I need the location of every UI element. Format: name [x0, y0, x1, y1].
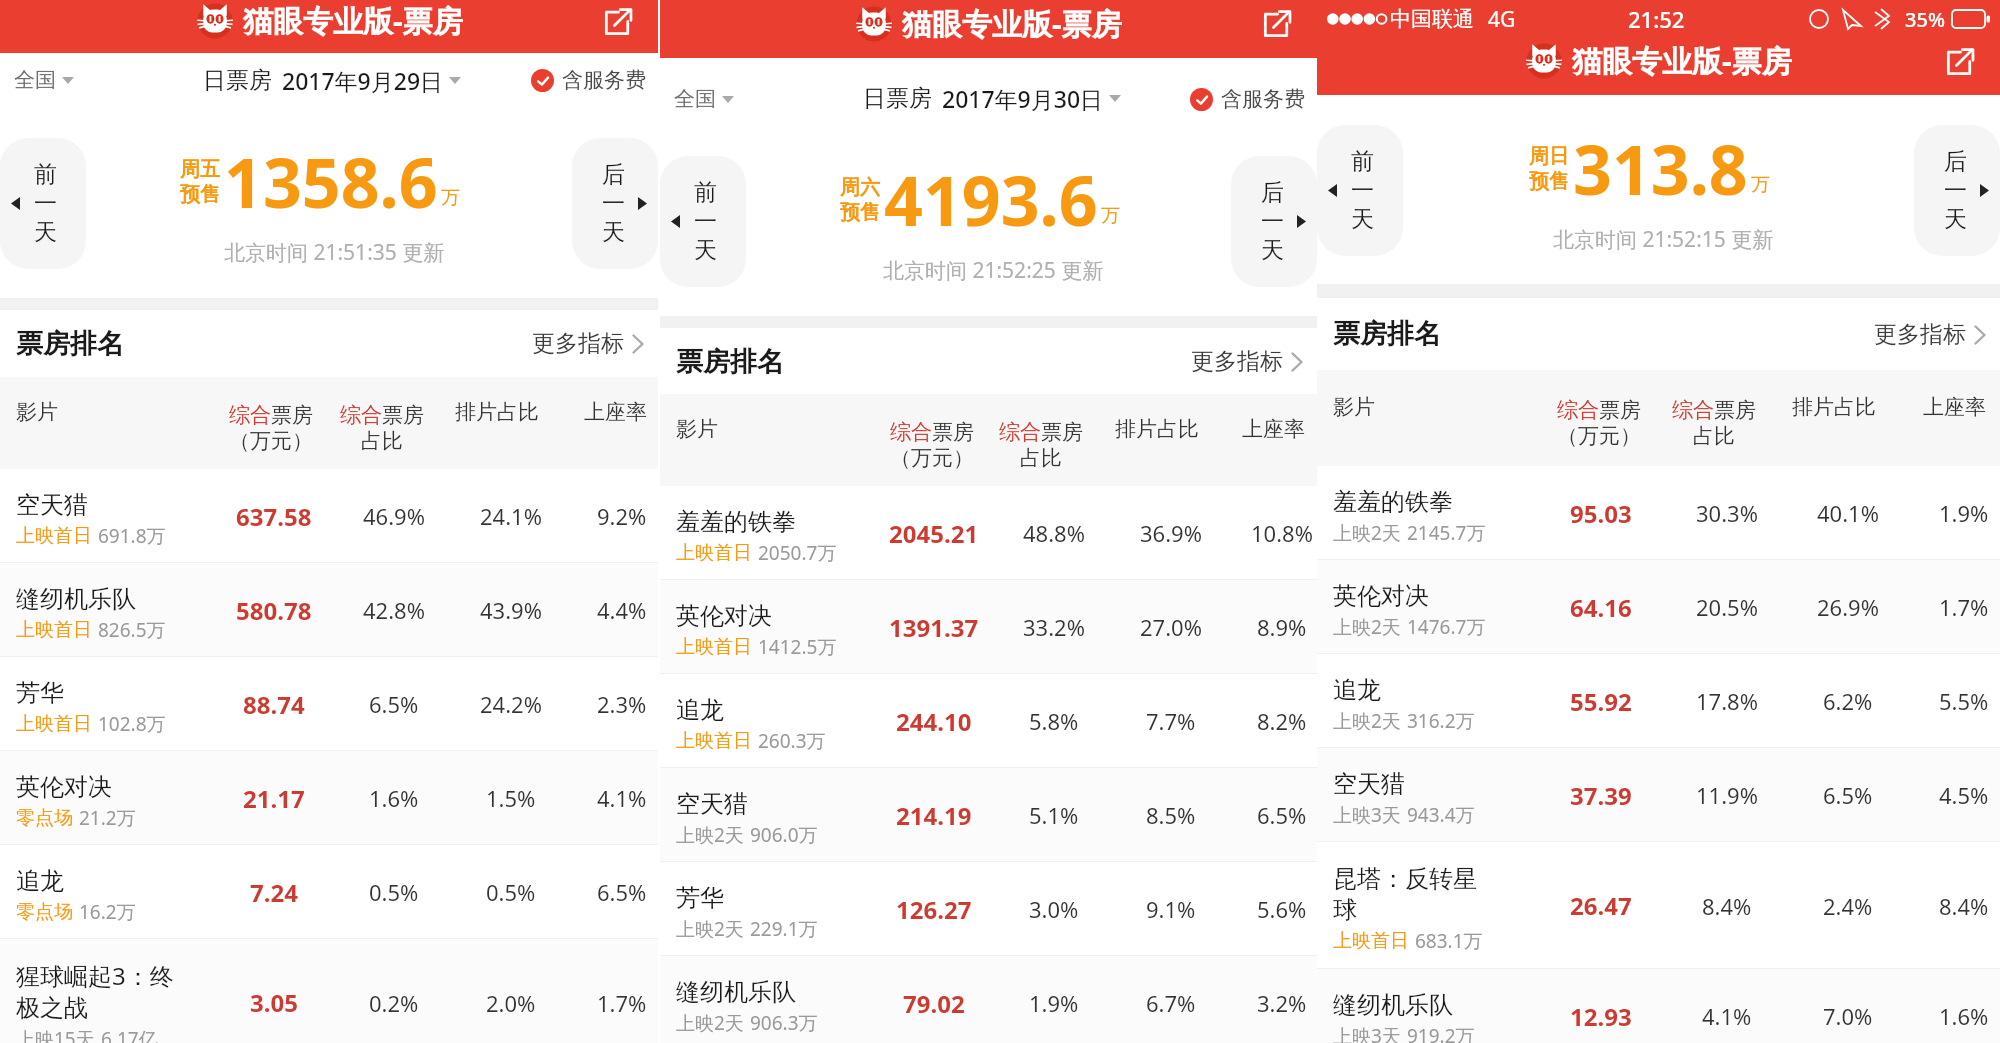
button[interactable]: 追龙: [0, 845, 658, 939]
staticText: 周六: [840, 175, 880, 200]
staticText: 7.7%: [1146, 706, 1196, 736]
staticText: 6.2%: [1823, 686, 1873, 716]
button[interactable]: 更多指标: [1183, 339, 1317, 384]
button[interactable]: 日票房: [863, 77, 1121, 120]
button[interactable]: 含服务费: [525, 61, 658, 99]
staticText: 95.03: [1570, 497, 1632, 530]
button[interactable]: 追龙: [660, 674, 1317, 768]
staticText: 天: [602, 218, 625, 247]
staticText: 943.4万: [1407, 802, 1475, 828]
staticText: 5.6%: [1257, 894, 1307, 924]
button[interactable]: 空天猎: [660, 768, 1317, 862]
staticText: 4.4%: [597, 595, 647, 625]
staticText: 1.7%: [1939, 592, 1989, 622]
staticText: 37.39: [1570, 779, 1632, 812]
button[interactable]: 含服务费: [1184, 80, 1317, 118]
button[interactable]: Share: [594, 0, 642, 45]
button[interactable]: 羞羞的铁拳: [660, 486, 1317, 580]
staticText: 5.5%: [1939, 686, 1989, 716]
button[interactable]: 空天猎: [1317, 748, 2000, 842]
staticText: 上映3天: [1333, 802, 1401, 828]
staticText: 占比: [361, 428, 403, 454]
staticText: 27.0%: [1140, 612, 1202, 642]
staticText: 猩球崛起3：终极之战: [16, 959, 179, 1023]
staticText: 综合票房: [340, 402, 424, 428]
staticText: 580.78: [236, 594, 312, 627]
staticText: 919.2万: [1407, 1023, 1475, 1043]
staticText: 42.8%: [363, 595, 425, 625]
staticText: 1.9%: [1939, 498, 1989, 528]
staticText: 上映2天: [676, 1010, 744, 1036]
staticText: 猫眼专业版-票房: [1572, 40, 1792, 81]
staticText: 2017年9月29日: [282, 65, 444, 96]
staticText: 北京时间 21:52:25 更新: [883, 256, 1104, 285]
button[interactable]: 芳华: [660, 862, 1317, 956]
button[interactable]: 缝纫机乐队: [1317, 969, 2000, 1043]
button[interactable]: 英伦对决: [0, 751, 658, 845]
button[interactable]: Next day: [1914, 125, 2000, 256]
button[interactable]: 缝纫机乐队: [660, 956, 1317, 1043]
staticText: 缝纫机乐队: [676, 977, 839, 1007]
button[interactable]: Previous day: [0, 138, 86, 269]
staticText: 7.24: [250, 876, 298, 909]
staticText: 691.8万: [98, 523, 166, 549]
button[interactable]: 日票房: [203, 59, 461, 102]
button[interactable]: Share: [1936, 37, 1984, 85]
button[interactable]: 芳华: [0, 657, 658, 751]
staticText: 1412.5万: [758, 634, 837, 660]
staticText: 排片占比: [1115, 416, 1199, 442]
button[interactable]: 昆塔：反转星球: [1317, 842, 2000, 969]
staticText: 6.5%: [1823, 780, 1873, 810]
staticText: 3.0%: [1029, 894, 1079, 924]
button[interactable]: 英伦对决: [660, 580, 1317, 674]
staticText: 全国: [674, 86, 716, 112]
button[interactable]: Previous day: [660, 156, 746, 287]
staticText: 综合票房: [229, 402, 313, 428]
staticText: 占比: [1020, 445, 1062, 471]
button[interactable]: 缝纫机乐队: [0, 563, 658, 657]
staticText: 906.0万: [750, 822, 818, 848]
button[interactable]: 更多指标: [524, 321, 658, 366]
staticText: 9.1%: [1146, 894, 1196, 924]
staticText: 周五: [180, 157, 220, 182]
staticText: 天: [694, 236, 717, 265]
button[interactable]: 英伦对决: [1317, 560, 2000, 654]
staticText: 48.8%: [1023, 518, 1085, 548]
staticText: 影片: [1333, 394, 1375, 420]
button[interactable]: 更多指标: [1866, 312, 2000, 357]
staticText: 24.2%: [480, 689, 542, 719]
staticText: 43.9%: [480, 595, 542, 625]
staticText: 906.3万: [750, 1010, 818, 1036]
button[interactable]: Previous day: [1317, 125, 1403, 256]
staticText: 4193.6: [884, 153, 1098, 246]
staticText: 9.2%: [597, 501, 647, 531]
staticText: 上映首日: [16, 524, 92, 548]
button[interactable]: 空天猎: [0, 469, 658, 563]
staticText: 前: [1351, 147, 1374, 176]
staticText: 5.1%: [1029, 800, 1079, 830]
button[interactable]: 追龙: [1317, 654, 2000, 748]
staticText: 2050.7万: [758, 540, 837, 566]
staticText: 猫眼专业版-票房: [902, 3, 1122, 44]
button[interactable]: 猩球崛起3：终极之战: [0, 939, 658, 1043]
button[interactable]: Share: [1253, 0, 1301, 47]
button[interactable]: Next day: [1231, 156, 1317, 287]
staticText: 8.9%: [1257, 612, 1307, 642]
staticText: 12.93: [1570, 1000, 1632, 1033]
staticText: 影片: [676, 416, 718, 442]
staticText: 英伦对决: [16, 772, 179, 802]
button[interactable]: 羞羞的铁拳: [1317, 466, 2000, 560]
staticText: 后: [602, 160, 625, 189]
button[interactable]: Next day: [572, 138, 658, 269]
button[interactable]: 全国: [660, 80, 740, 118]
staticText: 21.17: [243, 782, 305, 815]
staticText: 8.4%: [1702, 891, 1752, 921]
staticText: 空天猎: [676, 789, 839, 819]
staticText: 5.8%: [1029, 706, 1079, 736]
staticText: 含服务费: [1221, 86, 1305, 112]
staticText: 2145.7万: [1407, 520, 1486, 546]
button[interactable]: 全国: [0, 61, 80, 99]
staticText: 天: [34, 218, 57, 247]
staticText: 日票房: [203, 66, 272, 95]
staticText: 16.2万: [79, 899, 136, 925]
